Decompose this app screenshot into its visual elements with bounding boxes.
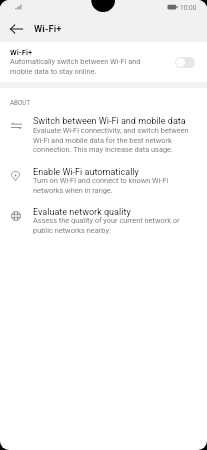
button[interactable]: Back	[3, 16, 29, 42]
staticText: connection. This may increase data usage…	[33, 145, 173, 154]
button[interactable]	[0, 160, 207, 200]
staticText: Assess the quality of your current netwo…	[33, 216, 180, 225]
staticText: mobile data to stay online.	[10, 67, 97, 76]
staticText: Wi-Fi+	[10, 48, 33, 57]
button[interactable]	[0, 109, 207, 149]
staticText: 10:00	[180, 4, 197, 12]
staticText: Wi-Fi and mobile data for the best netwo…	[33, 136, 172, 145]
staticText: Evaluate Wi-Fi connectivity, and switch …	[33, 126, 189, 135]
staticText: Evaluate network quality	[33, 207, 131, 218]
button[interactable]: Toggle Wi-Fi+	[175, 57, 195, 68]
staticText: ABOUT	[10, 99, 31, 106]
staticText: networks when in range.	[33, 186, 113, 195]
staticText: public networks nearby.	[33, 226, 111, 235]
staticText: Automatically switch between Wi-Fi and	[10, 57, 141, 66]
staticText: Turn on Wi-Fi and connect to known Wi-Fi	[33, 176, 169, 185]
button[interactable]	[0, 42, 207, 82]
button[interactable]	[0, 200, 207, 239]
staticText: Wi-Fi+	[34, 23, 62, 34]
staticText: Switch between Wi-Fi and mobile data	[33, 116, 186, 127]
staticText: Enable Wi-Fi automatically	[33, 167, 139, 178]
